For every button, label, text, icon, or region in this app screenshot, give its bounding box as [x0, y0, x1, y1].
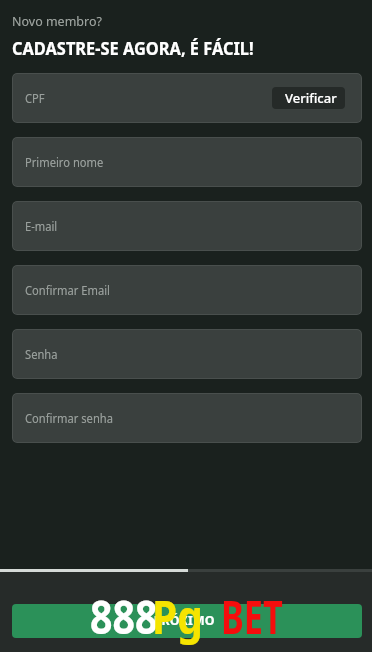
- staticText: Pg: [152, 585, 204, 647]
- button[interactable]: Confirmar Email: [12, 265, 362, 315]
- staticText: BET: [221, 585, 284, 647]
- staticText: Confirmar Email: [25, 282, 111, 298]
- staticText: PRÓXIMO: [154, 611, 215, 629]
- button[interactable]: Senha: [12, 329, 362, 379]
- button[interactable]: Verificar: [272, 87, 345, 109]
- staticText: Senha: [25, 346, 57, 362]
- button[interactable]: Primeiro nome: [12, 137, 362, 187]
- button[interactable]: CPF: [12, 73, 362, 123]
- staticText: E-mail: [25, 218, 57, 234]
- staticText: Verificar: [285, 89, 337, 107]
- staticText: CPF: [25, 90, 45, 106]
- button[interactable]: E-mail: [12, 201, 362, 251]
- staticText: Novo membro?: [12, 12, 102, 30]
- staticText: Primeiro nome: [25, 154, 104, 170]
- staticText: 888: [90, 585, 158, 647]
- staticText: CADASTRE-SE AGORA, É FÁCIL!: [12, 37, 254, 60]
- button[interactable]: PRÓXIMO: [12, 604, 362, 638]
- staticText: Confirmar senha: [25, 410, 113, 426]
- button[interactable]: Confirmar senha: [12, 393, 362, 443]
